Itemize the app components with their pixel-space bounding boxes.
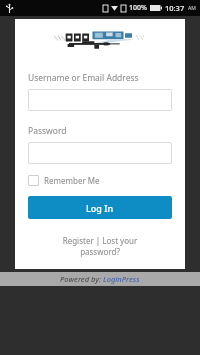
staticText: Powered by: — [60, 274, 103, 284]
button[interactable]: Username or Email Address field — [28, 89, 172, 111]
button[interactable]: Powered by: — [60, 274, 140, 284]
staticText: Password — [28, 125, 67, 137]
button[interactable]: Remember Me — [28, 175, 100, 186]
button[interactable]: Register | Lost your password? — [56, 235, 144, 258]
staticText: Remember Me — [44, 175, 100, 186]
staticText: 100% — [129, 3, 147, 13]
other: USB connected — [6, 4, 13, 13]
staticText: LoginPress — [103, 274, 140, 284]
staticText: Register | Lost your password? — [56, 235, 144, 258]
staticText: AM — [188, 5, 196, 12]
staticText: 10:37 — [165, 3, 185, 13]
button[interactable]: Password field — [28, 142, 172, 164]
button[interactable]: Log In — [28, 196, 172, 219]
staticText: Username or Email Address — [28, 72, 139, 84]
staticText: Log In — [86, 202, 114, 214]
